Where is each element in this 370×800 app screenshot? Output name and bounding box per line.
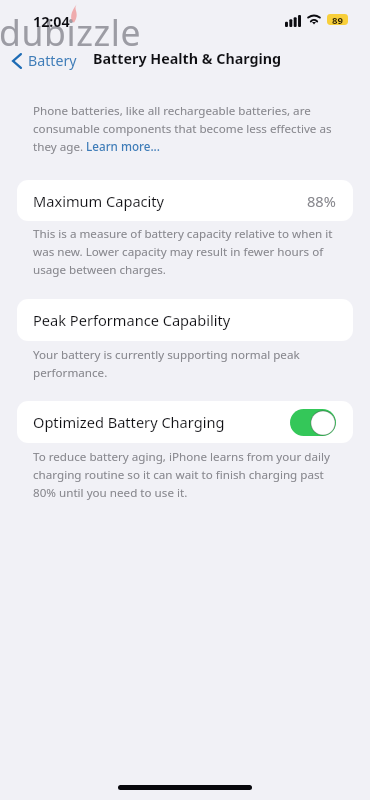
staticText: 89 [332, 14, 343, 25]
staticText: Phone batteries, like all rechargeable b… [33, 103, 340, 155]
staticText: 88% [307, 191, 336, 211]
staticText: Peak Performance Capability [33, 310, 231, 330]
button[interactable]: Maximum Capacity [17, 180, 353, 221]
button[interactable]: Optimized Battery Charging [17, 401, 353, 443]
staticText: dubizzle [0, 8, 142, 56]
staticText: Battery [28, 51, 77, 70]
staticText: This is a measure of battery capacity re… [33, 226, 340, 278]
button[interactable]: Battery [7, 48, 83, 73]
staticText: Your battery is currently supporting nor… [33, 347, 340, 381]
staticText: Battery Health & Charging [93, 49, 282, 68]
staticText: Optimized Battery Charging [33, 412, 225, 432]
staticText: To reduce battery aging, iPhone learns f… [33, 449, 340, 501]
button[interactable]: Optimized Battery Charging, on [290, 409, 336, 436]
staticText: Maximum Capacity [33, 191, 165, 211]
staticText: 12:04 [33, 12, 70, 31]
button[interactable]: Peak Performance Capability [17, 299, 353, 341]
